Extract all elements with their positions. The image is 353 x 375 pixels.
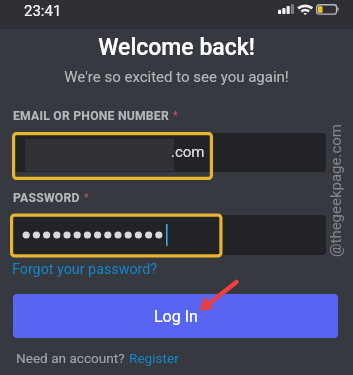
button[interactable]: Log In (13, 294, 338, 338)
other: Battery (316, 4, 340, 15)
staticText: Log In (154, 307, 198, 326)
staticText: PASSWORD (13, 191, 80, 205)
button[interactable]: .com (13, 133, 326, 172)
staticText: * (84, 191, 89, 204)
staticText: Welcome back! (0, 34, 353, 61)
staticText: @thegeekpage.com (327, 123, 345, 257)
staticText: Need an account? (16, 350, 129, 366)
other: Mobile signal strength (278, 4, 295, 14)
other: Wi-Fi (298, 4, 313, 16)
button[interactable]: Forgot your password? (11, 261, 159, 278)
staticText: EMAIL OR PHONE NUMBER (13, 109, 169, 123)
button[interactable] (13, 215, 326, 255)
staticText: * (173, 109, 178, 122)
staticText: 23:41 (24, 2, 62, 20)
staticText: .com (171, 143, 205, 161)
button[interactable]: Register (129, 350, 179, 366)
staticText: We're so excited to see you again! (0, 68, 353, 86)
